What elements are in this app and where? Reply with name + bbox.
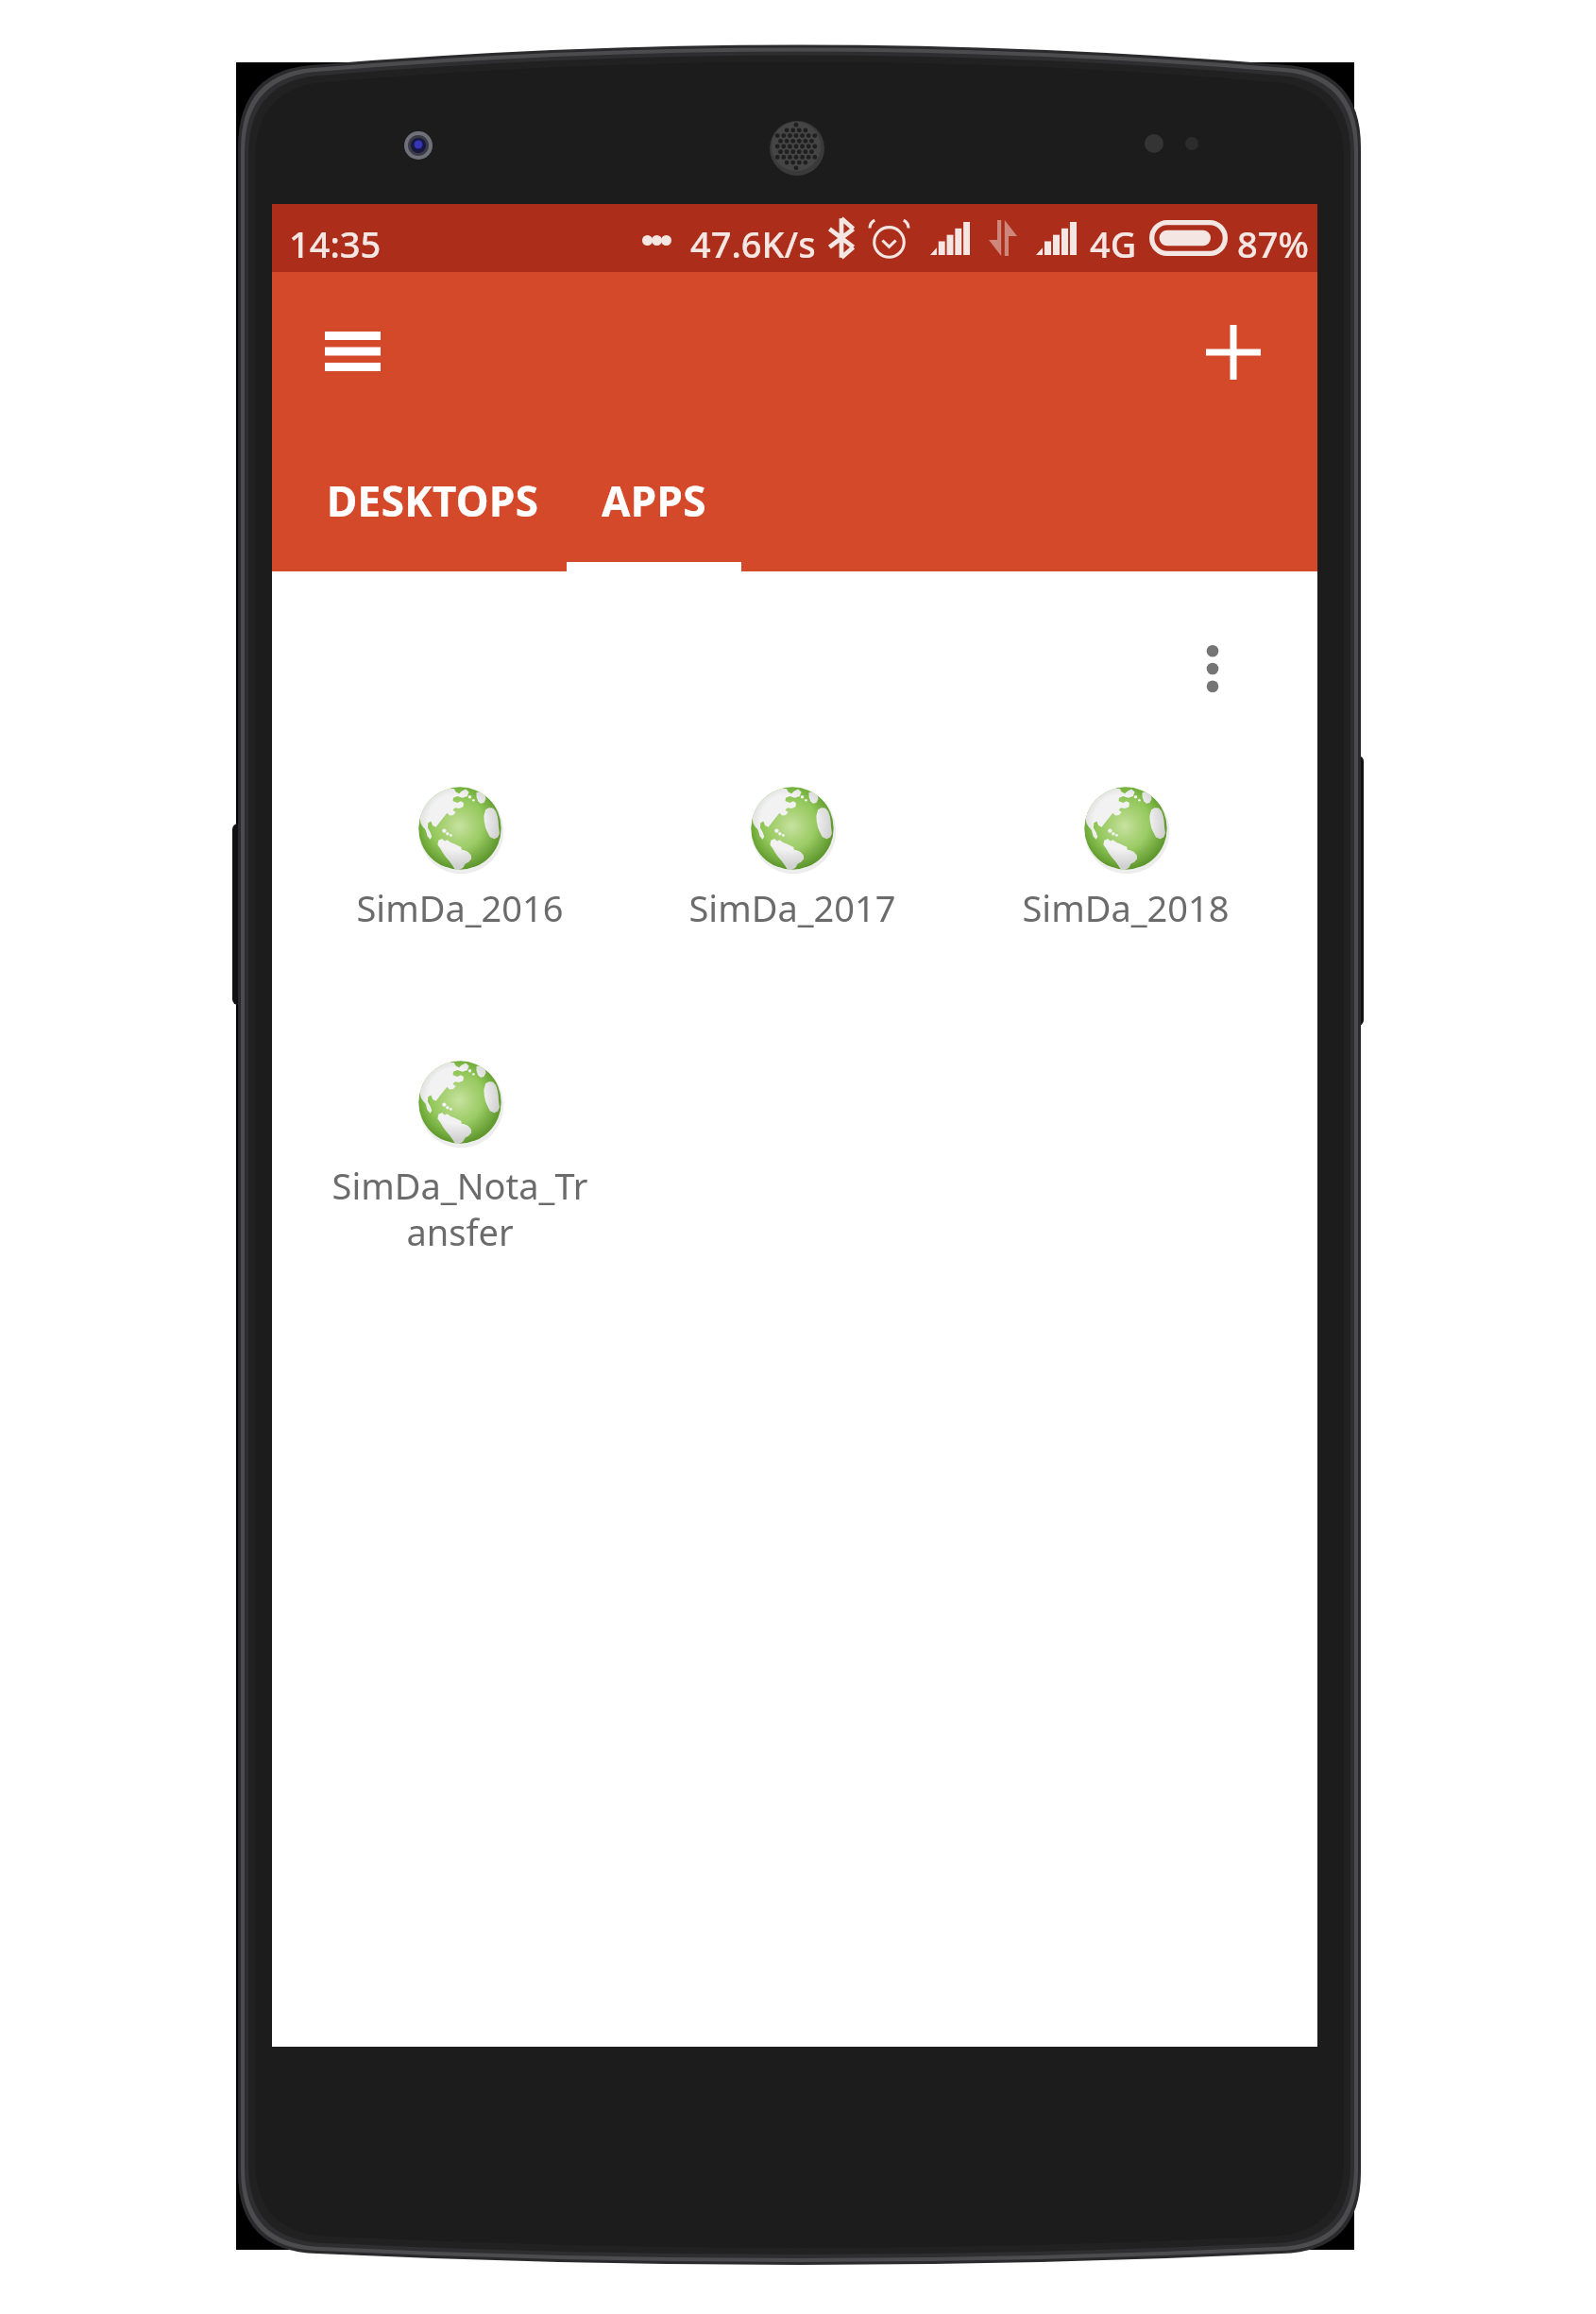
button[interactable]: DESKTOPS	[285, 447, 580, 571]
button[interactable]: Add	[1158, 300, 1309, 404]
button[interactable]: SimDa_2018	[984, 785, 1267, 1054]
staticText: 14:35	[289, 219, 382, 268]
staticText: SimDa_2016	[318, 883, 602, 932]
staticText: APPS	[602, 472, 706, 529]
button[interactable]: APPS	[567, 447, 741, 571]
button[interactable]: Open navigation menu	[276, 299, 430, 403]
button[interactable]: SimDa_2016	[318, 785, 602, 1054]
staticText: 87%	[1237, 219, 1309, 268]
staticText: 47.6K/s	[690, 219, 816, 268]
staticText: DESKTOPS	[327, 472, 539, 529]
staticText: SimDa_2018	[984, 883, 1267, 932]
button[interactable]: SimDa_Nota_Tr ansfer	[318, 1059, 602, 1328]
button[interactable]: More options	[1177, 633, 1248, 705]
button[interactable]: SimDa_2017	[651, 785, 934, 1054]
staticText: 4G	[1090, 219, 1137, 268]
staticText: SimDa_2017	[651, 883, 934, 932]
staticText: SimDa_Nota_Tr ansfer	[318, 1161, 602, 1256]
